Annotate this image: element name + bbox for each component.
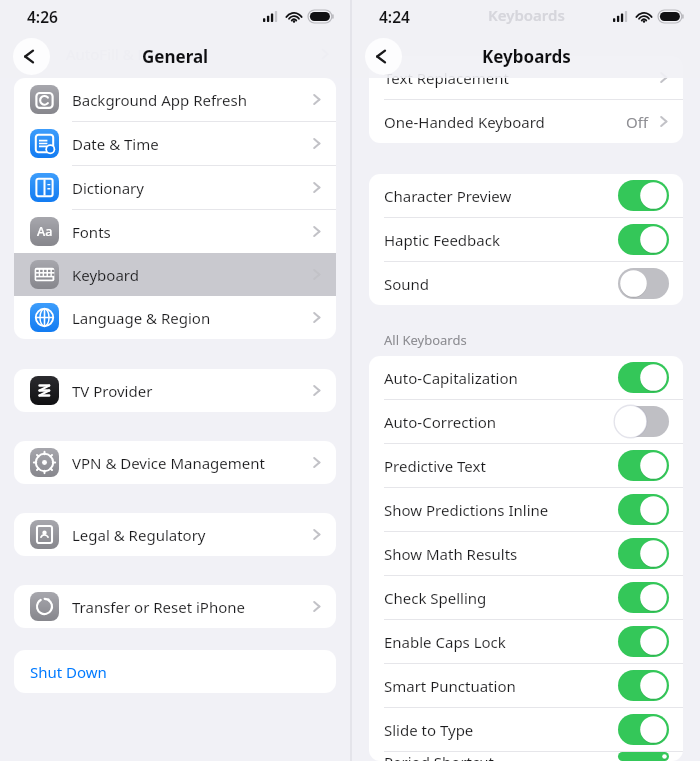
button[interactable]: Background App Refresh [14,78,336,121]
staticText: Enable Caps Lock [384,632,618,652]
staticText: Auto-Capitalization [384,368,618,388]
staticText: Background App Refresh [72,90,309,110]
button[interactable]: VPN & Device Management [14,441,336,484]
button[interactable] [618,268,669,299]
button[interactable] [618,362,669,393]
staticText: Character Preview [384,186,618,206]
staticText: 4:24 [379,6,410,27]
button[interactable] [618,406,669,437]
staticText: Keyboards [488,5,565,25]
button[interactable]: Legal & Regulatory [14,513,336,556]
button[interactable] [618,538,669,569]
button[interactable] [618,494,669,525]
button[interactable]: Character Preview [369,174,683,217]
staticText: Show Math Results [384,544,618,564]
staticText: AutoFill & Pas [66,44,163,64]
staticText: General [142,45,209,68]
button[interactable] [618,752,669,761]
staticText: Off [626,112,649,132]
staticText: Keyboards [482,45,571,68]
button[interactable]: Date & Time [14,122,336,165]
staticText: Auto-Correction [384,412,618,432]
button[interactable]: Enable Caps Lock [369,620,683,663]
staticText: All Keyboards [384,331,467,349]
staticText: Show Predictions Inline [384,500,618,520]
button[interactable]: Transfer or Reset iPhone [14,585,336,628]
button[interactable] [618,626,669,657]
button[interactable]: Predictive Text [369,444,683,487]
staticText: VPN & Device Management [72,453,309,473]
staticText: Sound [384,274,618,294]
button[interactable]: Auto-Capitalization [369,356,683,399]
button[interactable]: Show Math Results [369,532,683,575]
button[interactable]: Back [13,38,50,75]
button[interactable] [618,180,669,211]
staticText: Text Replacement [384,68,656,88]
staticText: Legal & Regulatory [72,525,309,545]
staticText: Check Spelling [384,588,618,608]
button[interactable]: Back [13,38,50,75]
button[interactable]: Aa [14,210,336,253]
button[interactable]: Smart Punctuation [369,664,683,707]
button[interactable]: Auto-Correction [369,400,683,443]
staticText: Aa [37,223,53,240]
staticText: 4:26 [27,6,58,27]
button[interactable]: Sound [369,262,683,305]
button[interactable] [618,714,669,745]
staticText: Shut Down [30,662,107,682]
staticText: Date & Time [72,134,309,154]
staticText: General [142,45,209,68]
staticText: Slide to Type [384,720,618,740]
button[interactable]: Show Predictions Inline [369,488,683,531]
staticText: Period Shortcut [384,752,618,761]
staticText: Fonts [72,222,309,242]
button[interactable]: Shut Down [14,650,336,693]
button[interactable]: Haptic Feedback [369,218,683,261]
button[interactable]: Check Spelling [369,576,683,619]
button[interactable]: TV Provider [14,369,336,412]
button[interactable]: Text Replacement [369,56,683,99]
staticText: Transfer or Reset iPhone [72,597,309,617]
button[interactable] [618,670,669,701]
staticText: Smart Punctuation [384,676,618,696]
button[interactable]: Keyboard [14,253,336,296]
button[interactable] [618,582,669,613]
button[interactable]: Slide to Type [369,708,683,751]
staticText: Language & Region [72,308,309,328]
staticText: One-Handed Keyboard [384,112,626,132]
staticText: 4:26 [27,6,58,27]
button[interactable]: Language & Region [14,296,336,339]
staticText: Predictive Text [384,456,618,476]
button[interactable] [618,450,669,481]
staticText: Dictionary [72,178,309,198]
staticText: Keyboard [72,265,309,285]
staticText: Haptic Feedback [384,230,618,250]
button[interactable] [618,224,669,255]
button[interactable]: One-Handed Keyboard [369,100,683,143]
button[interactable]: Back [365,38,402,75]
button[interactable]: Period Shortcut [369,752,683,761]
button[interactable]: Dictionary [14,166,336,209]
staticText: TV Provider [72,381,309,401]
